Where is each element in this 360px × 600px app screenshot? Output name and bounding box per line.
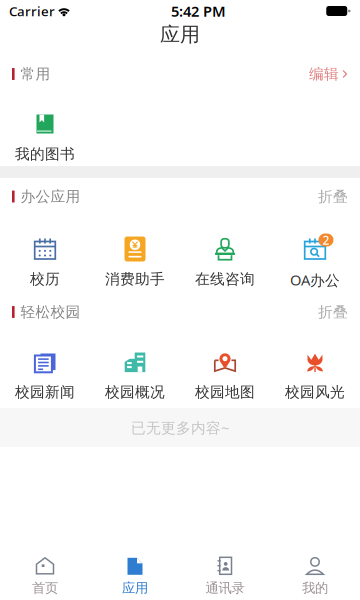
staticText: 折叠 [318, 303, 348, 321]
staticText: 在线咨询 [195, 270, 255, 288]
button[interactable]: 编辑 [309, 65, 348, 83]
button[interactable]: 我的图书 [0, 90, 90, 166]
staticText: 首页 [32, 580, 58, 596]
staticText: 我的 [302, 580, 328, 596]
staticText: 校园概况 [105, 383, 165, 401]
button[interactable]: 首页 [0, 552, 90, 600]
button[interactable]: 2 [270, 215, 360, 296]
staticText: 消费助手 [105, 270, 165, 288]
button[interactable]: 校园地图 [180, 328, 270, 408]
staticText: OA办公 [290, 270, 340, 290]
staticText: 已无更多内容~ [131, 418, 229, 437]
staticText: 校园地图 [195, 383, 255, 401]
staticText: 应用 [160, 22, 200, 47]
staticText: 校园新闻 [15, 383, 75, 401]
staticText: 校园风光 [285, 383, 345, 401]
staticText: 折叠 [318, 187, 348, 205]
button[interactable]: 校园新闻 [0, 328, 90, 408]
staticText: 轻松校园 [21, 303, 81, 321]
button[interactable]: 通讯录 [180, 552, 270, 600]
staticText: Carrier [9, 2, 55, 20]
button[interactable]: 校历 [0, 215, 90, 296]
staticText: 常用 [21, 65, 51, 83]
staticText: 编辑 [309, 65, 339, 83]
button[interactable]: 校园风光 [270, 328, 360, 408]
button[interactable]: 折叠 [318, 303, 348, 321]
button[interactable]: 应用 [90, 552, 180, 600]
staticText: 我的图书 [15, 145, 75, 163]
staticText: 5:42 PM [171, 1, 226, 21]
button[interactable]: 折叠 [318, 187, 348, 205]
staticText: 通讯录 [205, 580, 244, 596]
button[interactable]: 校园概况 [90, 328, 180, 408]
staticText: 校历 [30, 270, 60, 288]
button[interactable]: 我的 [270, 552, 360, 600]
staticText: 应用 [122, 580, 148, 596]
staticText: 2 [322, 232, 329, 248]
staticText: 办公应用 [21, 187, 81, 205]
button[interactable]: 消费助手 [90, 215, 180, 296]
button[interactable]: 在线咨询 [180, 215, 270, 296]
